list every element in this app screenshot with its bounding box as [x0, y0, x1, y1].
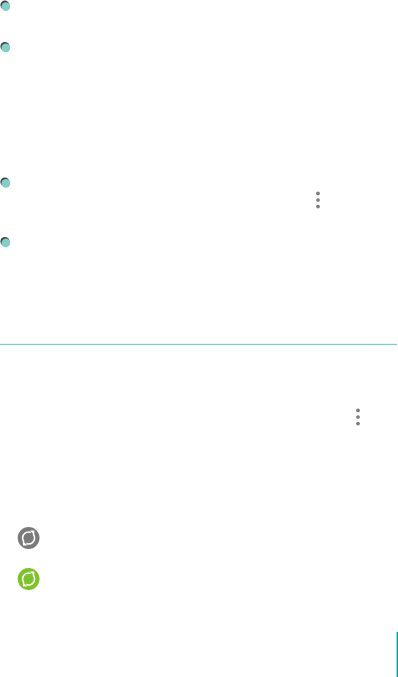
button[interactable]: More options — [342, 401, 374, 433]
button[interactable]: Sync paused — [0, 522, 398, 554]
button[interactable]: Account 4 — [0, 202, 398, 343]
button[interactable]: Sync on — [0, 563, 398, 595]
button[interactable]: Account 2 — [0, 27, 398, 142]
button[interactable]: More options — [302, 184, 334, 216]
button[interactable]: Account 3 — [0, 142, 398, 202]
button[interactable]: Account 1 — [0, 0, 398, 27]
